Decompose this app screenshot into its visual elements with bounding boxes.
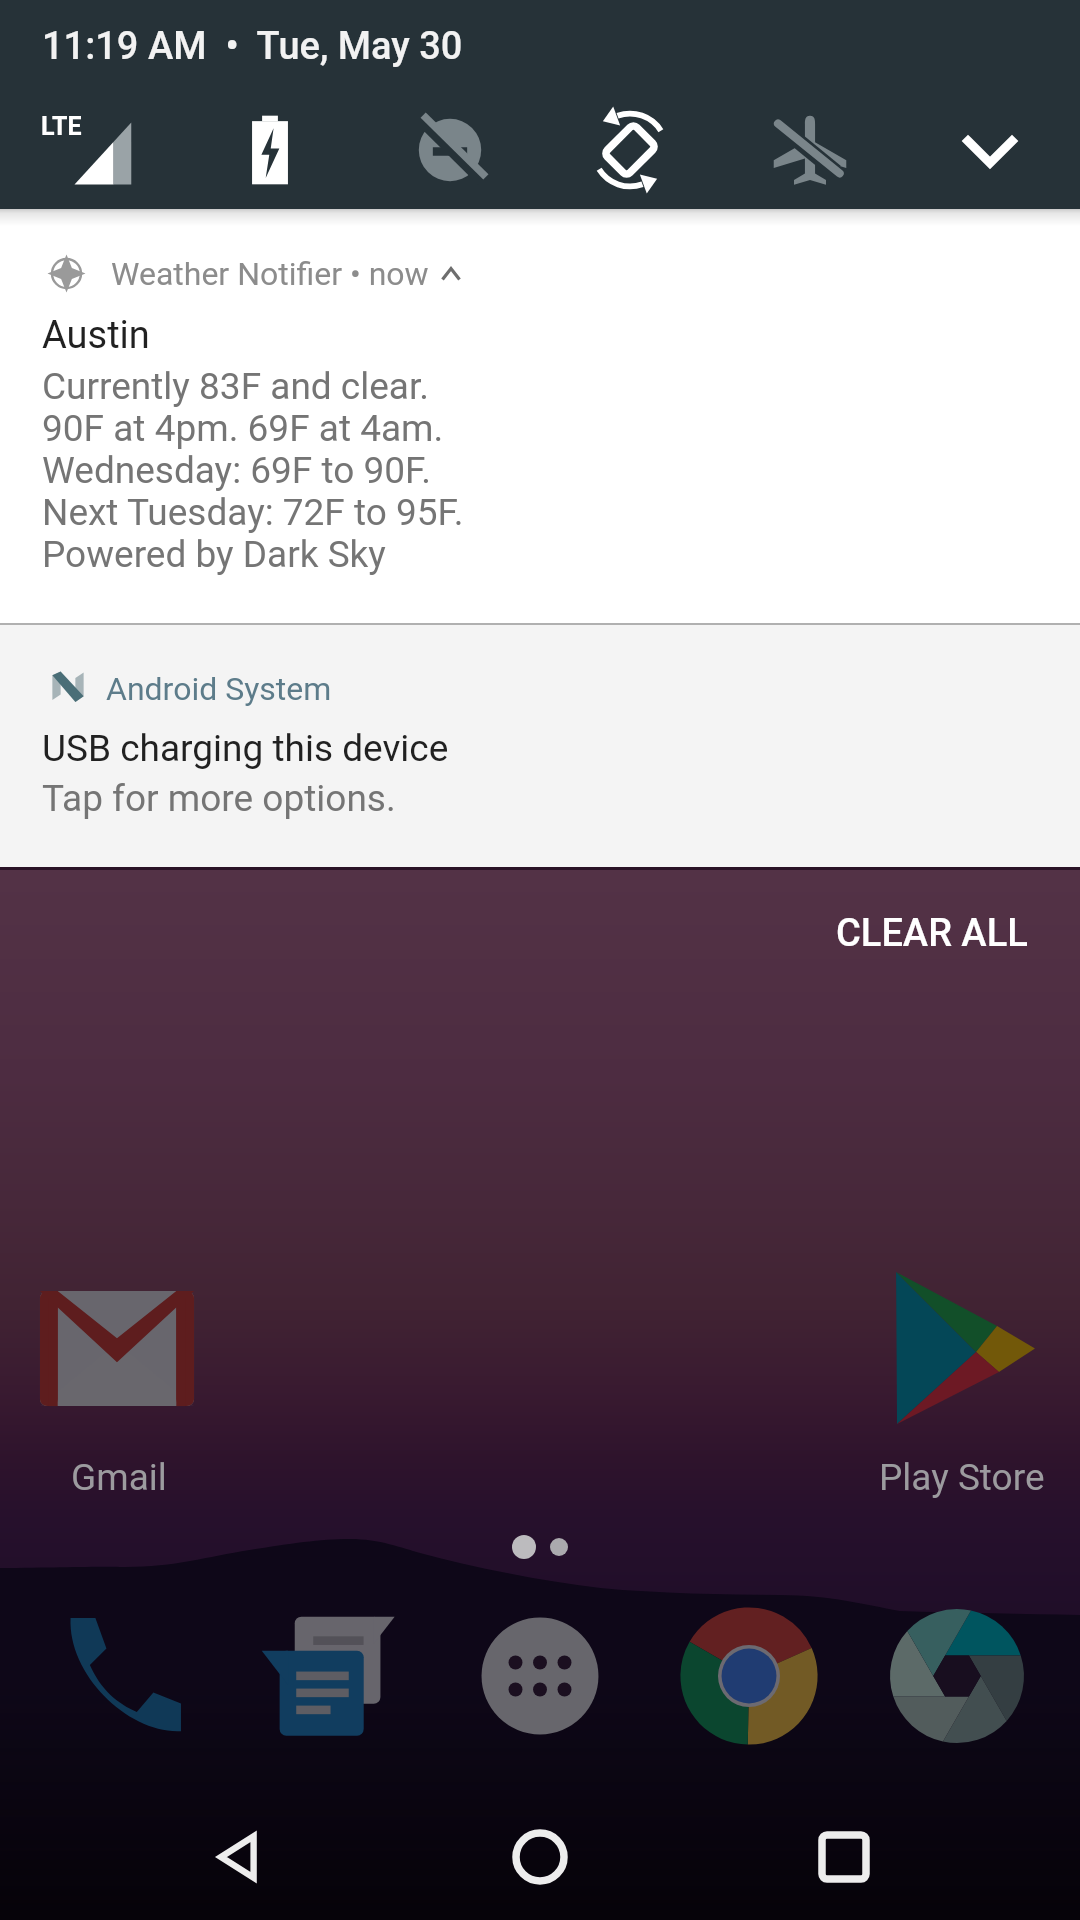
staticText: CLEAR ALL bbox=[836, 911, 1028, 956]
staticText: Weather Notifier • now bbox=[111, 255, 429, 293]
button[interactable]: Signal bbox=[0, 100, 180, 200]
staticText: LTE bbox=[41, 112, 82, 141]
button[interactable]: Weather Notifier • now bbox=[0, 209, 1080, 623]
button[interactable]: Android System bbox=[0, 625, 1080, 867]
button[interactable]: Gmail bbox=[19, 1272, 219, 1499]
button[interactable]: Play Store bbox=[862, 1272, 1062, 1499]
button[interactable]: All apps bbox=[454, 1590, 626, 1762]
button[interactable]: Chrome bbox=[663, 1590, 835, 1762]
staticText: Currently 83F and clear. 90F at 4pm. 69F… bbox=[42, 365, 464, 576]
staticText: USB charging this device bbox=[42, 727, 449, 770]
button[interactable]: Airplane mode bbox=[720, 100, 900, 200]
button[interactable]: Battery bbox=[180, 100, 360, 200]
button[interactable]: Camera bbox=[871, 1590, 1043, 1762]
button[interactable]: Do not disturb bbox=[360, 100, 540, 200]
staticText: 11:19 AM • Tue, May 30 bbox=[42, 24, 463, 69]
button[interactable]: Back bbox=[156, 1794, 316, 1920]
button[interactable]: Auto rotate bbox=[540, 100, 720, 200]
button[interactable]: CLEAR ALL bbox=[784, 870, 1080, 996]
staticText: Play Store bbox=[879, 1456, 1045, 1499]
button[interactable]: Expand bbox=[900, 100, 1080, 200]
staticText: Austin bbox=[42, 313, 150, 358]
staticText: Tap for more options. bbox=[42, 777, 396, 820]
button[interactable]: Phone bbox=[37, 1590, 209, 1762]
button[interactable]: Home bbox=[460, 1794, 620, 1920]
button[interactable]: Messages bbox=[245, 1590, 417, 1762]
button[interactable]: Recent apps bbox=[764, 1794, 924, 1920]
staticText: Android System bbox=[106, 670, 332, 708]
staticText: Gmail bbox=[71, 1456, 167, 1499]
